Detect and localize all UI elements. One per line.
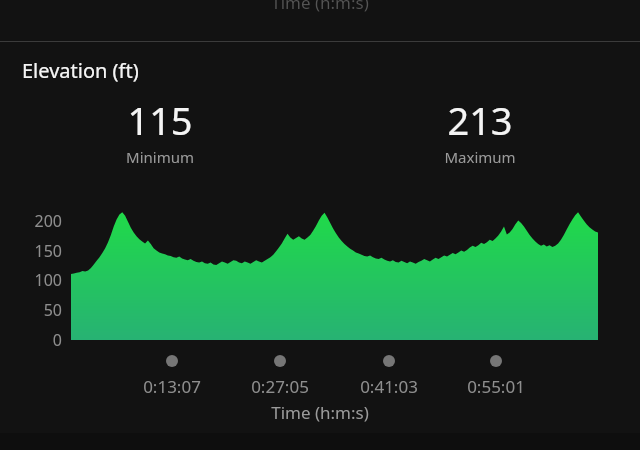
staticText: 50: [43, 299, 62, 321]
staticText: 0:55:01: [467, 375, 525, 398]
staticText: 213: [447, 94, 513, 146]
button[interactable]: 213: [320, 94, 640, 167]
staticText: Minimum: [126, 147, 194, 167]
staticText: 115: [127, 94, 193, 146]
staticText: 0:41:03: [360, 375, 418, 398]
button[interactable]: Elevation over time chart: [0, 0, 640, 450]
staticText: Time (h:m:s): [271, 0, 369, 14]
staticText: Maximum: [444, 147, 516, 167]
staticText: 0:13:07: [143, 375, 201, 398]
staticText: 100: [34, 269, 62, 291]
staticText: 0: [52, 329, 62, 351]
button[interactable]: 115: [0, 94, 320, 167]
staticText: 150: [34, 240, 62, 262]
staticText: Elevation (ft): [22, 57, 139, 84]
staticText: Time (h:m:s): [271, 401, 369, 424]
staticText: 0:27:05: [251, 375, 309, 398]
staticText: 200: [34, 210, 62, 232]
